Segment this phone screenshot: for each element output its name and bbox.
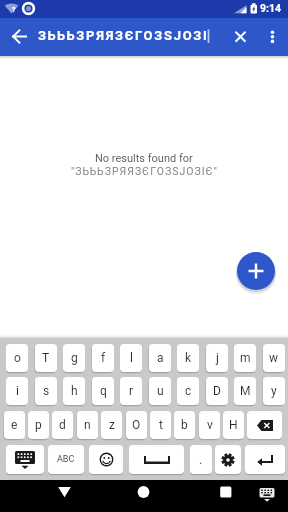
staticText: c <box>185 384 192 398</box>
staticText: "ЗЬЬЬЗРЯЯЗЄГОЗЅЈОЗІЄ" <box>71 165 218 177</box>
staticText: g <box>71 351 78 365</box>
button[interactable]: w <box>263 344 285 372</box>
staticText: w <box>269 351 279 365</box>
staticText: b <box>181 418 188 432</box>
staticText: j <box>216 351 219 365</box>
button[interactable]: f <box>92 344 114 372</box>
button[interactable] <box>6 24 32 50</box>
staticText: No results found for <box>95 152 193 165</box>
button[interactable]: o <box>6 344 28 372</box>
button[interactable] <box>129 445 184 474</box>
staticText: r <box>129 384 134 398</box>
button[interactable]: k <box>177 344 199 372</box>
button[interactable]: M <box>234 377 256 405</box>
button[interactable]: b <box>174 411 195 439</box>
staticText: f <box>101 351 106 365</box>
staticText: H <box>229 418 238 432</box>
button[interactable] <box>237 252 275 290</box>
button[interactable]: . <box>190 445 212 474</box>
staticText: ? <box>12 6 16 14</box>
button[interactable]: O <box>126 411 147 439</box>
button[interactable]: c <box>177 377 199 405</box>
button[interactable] <box>247 411 282 439</box>
staticText: l <box>130 351 133 365</box>
button[interactable]: m <box>234 344 256 372</box>
staticText: n <box>84 418 91 432</box>
staticText: t <box>159 418 163 432</box>
staticText: m <box>240 351 251 365</box>
staticText: v <box>207 418 213 432</box>
staticText: e <box>11 418 18 432</box>
staticText: o <box>14 351 21 365</box>
staticText: ABC <box>57 454 75 465</box>
button[interactable] <box>89 445 123 474</box>
button[interactable] <box>6 445 44 474</box>
button[interactable] <box>252 480 282 512</box>
button[interactable] <box>262 24 284 46</box>
staticText: y <box>271 384 277 398</box>
button[interactable]: s <box>35 377 57 405</box>
button[interactable]: t <box>150 411 171 439</box>
staticText: ЗЬЬЬЗРЯЯЗЄГОЗЅЈОЗІ <box>38 28 209 43</box>
button[interactable]: u <box>149 377 171 405</box>
button[interactable]: n <box>77 411 98 439</box>
button[interactable]: q <box>92 377 114 405</box>
button[interactable]: r <box>120 377 142 405</box>
staticText: k <box>185 351 192 365</box>
button[interactable] <box>245 445 285 474</box>
staticText: q <box>100 384 107 398</box>
staticText: i <box>16 384 19 398</box>
button[interactable]: z <box>101 411 122 439</box>
staticText: a <box>157 351 164 365</box>
button[interactable]: ABC <box>48 445 84 474</box>
button[interactable]: T <box>35 344 57 372</box>
button[interactable]: h <box>63 377 85 405</box>
staticText: D <box>213 384 221 398</box>
button[interactable]: D <box>206 377 228 405</box>
staticText: s <box>43 384 50 398</box>
staticText: z <box>109 418 115 432</box>
button[interactable]: p <box>28 411 49 439</box>
staticText: p <box>35 418 42 432</box>
button[interactable]: a <box>149 344 171 372</box>
button[interactable]: v <box>199 411 220 439</box>
button[interactable] <box>228 24 253 49</box>
button[interactable] <box>127 480 161 512</box>
staticText: d <box>59 418 66 432</box>
button[interactable]: j <box>206 344 228 372</box>
button[interactable]: e <box>4 411 25 439</box>
button[interactable]: l <box>120 344 142 372</box>
button[interactable] <box>48 480 82 512</box>
button[interactable]: H <box>223 411 244 439</box>
staticText: . <box>199 453 203 467</box>
button[interactable] <box>215 445 241 474</box>
button[interactable]: g <box>63 344 85 372</box>
button[interactable]: y <box>263 377 285 405</box>
staticText: h <box>71 384 78 398</box>
button[interactable] <box>208 480 242 512</box>
staticText: T <box>42 351 50 365</box>
button[interactable]: i <box>6 377 28 405</box>
staticText: u <box>157 384 164 398</box>
button[interactable]: d <box>52 411 73 439</box>
staticText: 9:14 <box>260 2 282 14</box>
staticText: M <box>240 384 251 398</box>
staticText: O <box>132 418 141 432</box>
